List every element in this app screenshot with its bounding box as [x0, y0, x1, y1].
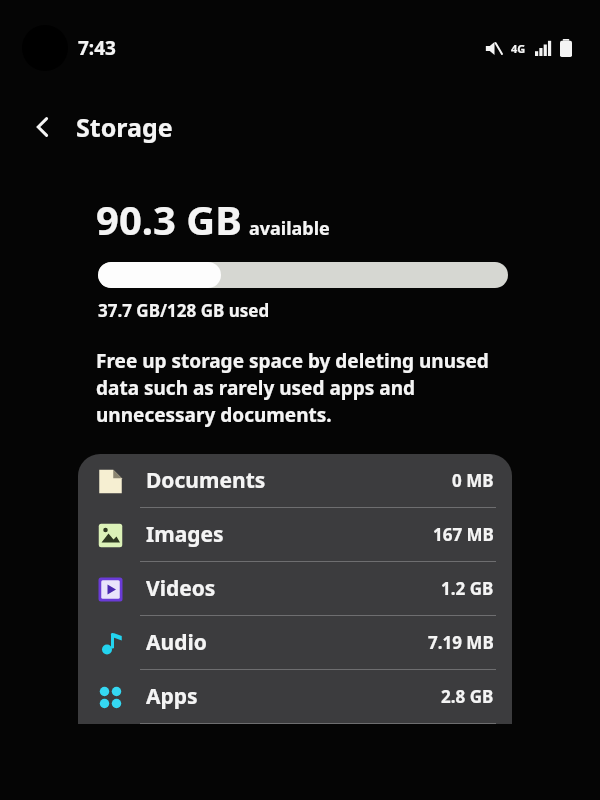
button[interactable]: Videos	[78, 562, 512, 615]
button[interactable]: Back	[20, 104, 66, 150]
staticText: Storage	[76, 110, 173, 144]
staticText: 7:43	[78, 35, 116, 61]
staticText: 2.8 GB	[441, 685, 494, 708]
button[interactable]: Apps	[78, 670, 512, 723]
staticText: 0 MB	[452, 469, 494, 492]
staticText: 90.3 GB	[96, 192, 242, 246]
staticText: 7.19 MB	[428, 631, 494, 654]
button[interactable]: Audio	[78, 616, 512, 669]
staticText: 1.2 GB	[441, 577, 494, 600]
staticText: Audio	[146, 628, 207, 657]
staticText: Images	[146, 520, 224, 549]
button[interactable]: Images	[78, 508, 512, 561]
staticText: Documents	[146, 466, 266, 495]
staticText: Free up storage space by deleting unused…	[96, 348, 514, 428]
staticText: Apps	[146, 682, 198, 711]
staticText: 4G	[511, 41, 526, 56]
staticText: Videos	[146, 574, 216, 603]
staticText: available	[249, 216, 330, 241]
staticText: 37.7 GB/128 GB used	[98, 299, 270, 322]
button[interactable]: Documents	[78, 454, 512, 507]
staticText: 167 MB	[433, 523, 494, 546]
